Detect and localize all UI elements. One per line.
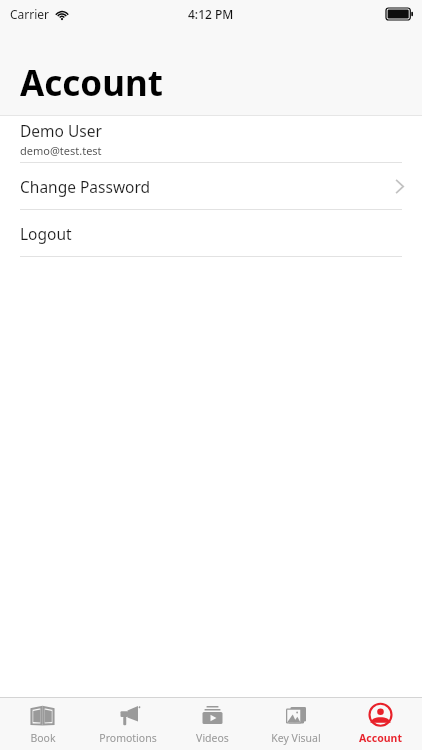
staticText: Change Password bbox=[20, 176, 151, 197]
button[interactable]: Change Password bbox=[0, 163, 422, 209]
staticText: Carrier bbox=[10, 6, 50, 22]
button[interactable]: Account bbox=[338, 698, 422, 750]
button[interactable]: Book bbox=[0, 698, 85, 750]
button[interactable]: Videos bbox=[170, 698, 254, 750]
staticText: Logout bbox=[20, 223, 72, 244]
staticText: Account bbox=[20, 59, 163, 107]
staticText: Key Visual bbox=[271, 731, 321, 745]
staticText: Book bbox=[30, 731, 56, 745]
staticText: 4:12 PM bbox=[188, 6, 234, 22]
staticText: Account bbox=[359, 731, 402, 745]
staticText: Videos bbox=[196, 731, 229, 745]
staticText: Demo User bbox=[20, 120, 102, 141]
staticText: demo@test.test bbox=[20, 143, 102, 158]
button[interactable]: Demo User bbox=[0, 116, 422, 162]
button[interactable]: Key Visual bbox=[254, 698, 338, 750]
button[interactable]: Promotions bbox=[85, 698, 170, 750]
button[interactable]: Logout bbox=[0, 210, 422, 256]
staticText: Promotions bbox=[99, 731, 157, 745]
